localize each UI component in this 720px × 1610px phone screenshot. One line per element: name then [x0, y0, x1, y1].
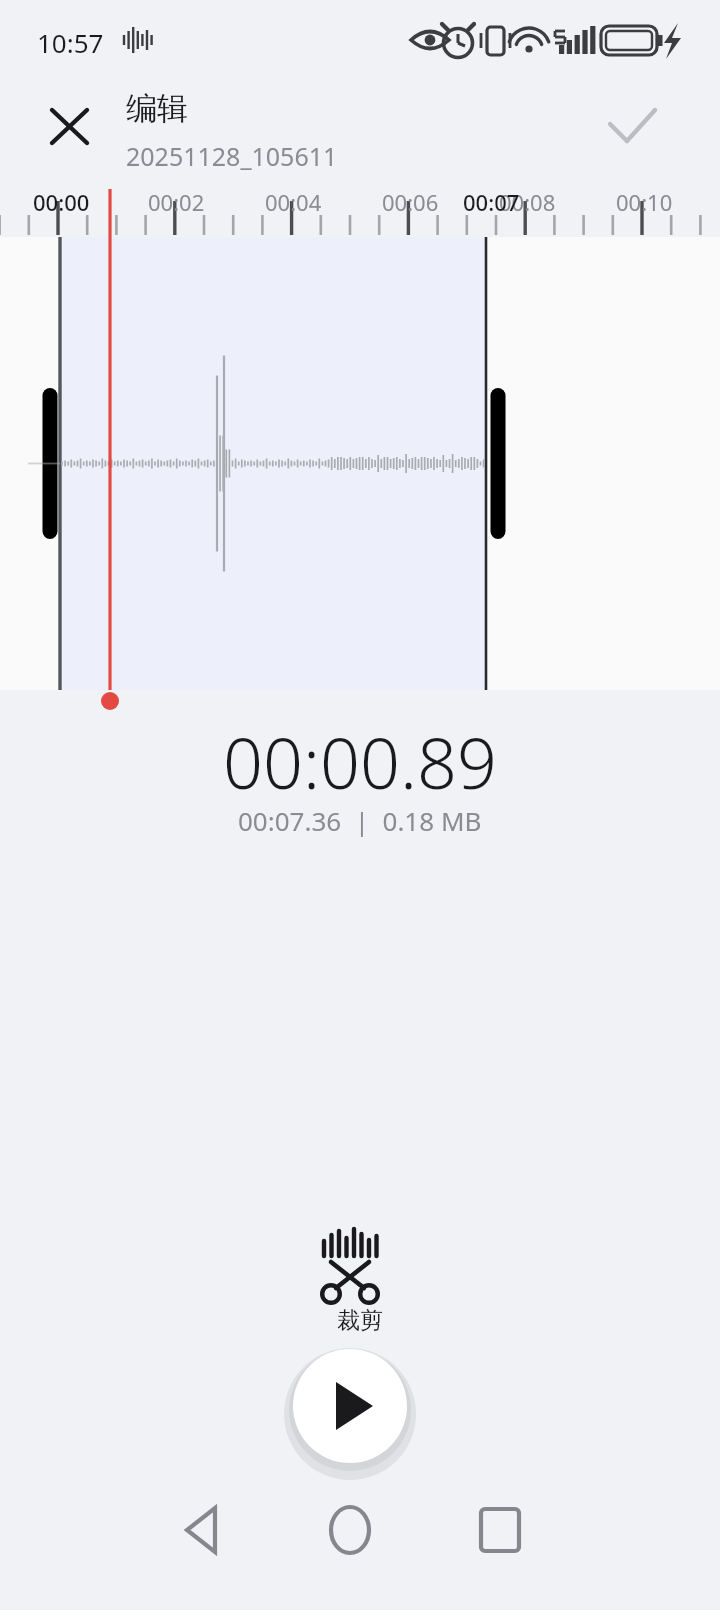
staticText: 00:04	[265, 187, 322, 217]
staticText: 裁剪	[337, 1306, 383, 1335]
button[interactable]: Close	[35, 92, 103, 160]
button[interactable]	[290, 1228, 410, 1340]
staticText: 10:57	[37, 25, 104, 60]
staticText: 00:10	[616, 187, 673, 217]
staticText: 00:00	[33, 187, 90, 217]
button[interactable]: Back	[152, 1480, 252, 1580]
staticText: 00:08	[499, 187, 556, 217]
button[interactable]: Play	[293, 1349, 407, 1463]
staticText: 编辑	[126, 89, 188, 128]
staticText: 00:07	[463, 187, 520, 217]
button[interactable]: Confirm	[598, 91, 666, 159]
staticText: 00:00.89	[223, 714, 497, 809]
button[interactable]: Recents	[450, 1480, 550, 1580]
staticText: 00:07.36 | 0.18 MB	[238, 803, 482, 838]
staticText: 20251128_105611	[126, 139, 338, 173]
staticText: 00:02	[148, 187, 205, 217]
button[interactable]: Home	[300, 1480, 400, 1580]
staticText: 00:06	[382, 187, 439, 217]
